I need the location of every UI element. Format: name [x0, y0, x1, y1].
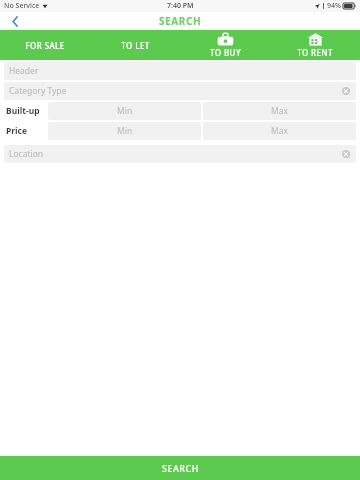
- button[interactable]: TO LET: [90, 30, 180, 60]
- staticText: Price: [6, 125, 28, 137]
- staticText: No Service: [4, 1, 40, 11]
- button[interactable]: TO BUY: [180, 30, 270, 60]
- staticText: Min: [117, 125, 133, 137]
- button[interactable]: Location: [4, 145, 356, 163]
- staticText: Max: [271, 125, 288, 137]
- staticText: SEARCH: [162, 462, 199, 474]
- button[interactable]: TO RENT: [270, 30, 360, 60]
- button[interactable]: Clear: [340, 148, 352, 160]
- staticText: TO RENT: [297, 47, 333, 58]
- staticText: FOR SALE: [25, 40, 65, 51]
- button[interactable]: Category Type: [4, 82, 356, 100]
- staticText: Max: [271, 105, 288, 117]
- staticText: TO BUY: [210, 47, 241, 58]
- staticText: Min: [117, 105, 133, 117]
- staticText: 94%: [327, 1, 341, 11]
- button[interactable]: Clear: [340, 85, 352, 97]
- staticText: 7:40 PM: [167, 1, 194, 11]
- button[interactable]: FOR SALE: [0, 30, 90, 60]
- staticText: TO LET: [121, 40, 150, 51]
- staticText: SEARCH: [159, 14, 202, 28]
- button[interactable]: Header: [4, 62, 356, 80]
- button[interactable]: Max: [203, 102, 356, 120]
- button[interactable]: Min: [48, 102, 201, 120]
- button[interactable]: Min: [48, 122, 201, 140]
- staticText: Category Type: [9, 85, 67, 97]
- button[interactable]: SEARCH: [0, 456, 360, 480]
- staticText: Location: [9, 148, 44, 160]
- button[interactable]: Back: [0, 12, 30, 30]
- staticText: Built-up: [6, 105, 40, 117]
- button[interactable]: Max: [203, 122, 356, 140]
- staticText: Header: [9, 65, 39, 77]
